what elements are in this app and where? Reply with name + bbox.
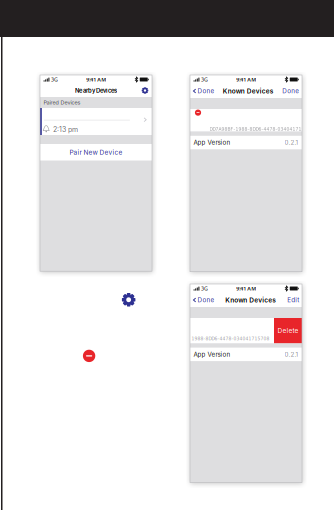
staticText: Delete — [277, 327, 298, 335]
staticText: Paired Devices — [43, 99, 80, 106]
button[interactable]: Delete — [274, 318, 302, 343]
staticText: Known Devices — [225, 296, 276, 304]
staticText: Done — [282, 87, 299, 95]
staticText: Known Devices — [223, 87, 274, 95]
staticText: 3G — [51, 76, 58, 83]
button[interactable]: 2:13 pm — [40, 108, 152, 135]
staticText: App Version — [193, 139, 230, 146]
button[interactable]: Done — [282, 84, 302, 98]
staticText: Nearby Devices — [75, 87, 117, 94]
staticText: 3G — [201, 285, 208, 292]
staticText: 2:13 pm — [53, 125, 78, 134]
staticText: Done — [197, 87, 214, 95]
staticText: Pair New Device — [69, 148, 122, 156]
button[interactable]: Done — [190, 293, 214, 307]
staticText: 1988-8DD6-4478-034041715708 — [191, 336, 269, 341]
staticText: Edit — [287, 296, 299, 304]
staticText: 3G — [201, 76, 208, 83]
staticText: 9:41 AM — [86, 76, 106, 83]
staticText: 9:41 AM — [236, 76, 256, 83]
button[interactable]: Done — [190, 84, 214, 98]
staticText: 9:41 AM — [236, 285, 256, 292]
button[interactable]: Settings — [139, 84, 150, 97]
staticText: DD7A98BF-1988-8DD6-4478-034041715708 — [209, 126, 313, 132]
staticText: Done — [197, 296, 214, 304]
button[interactable]: Remove device — [192, 107, 203, 118]
button[interactable]: Edit — [287, 293, 302, 307]
button[interactable]: Pair New Device — [40, 144, 152, 160]
staticText: 0.2.1 — [284, 351, 298, 358]
staticText: 0.2.1 — [284, 139, 298, 146]
staticText: App Version — [193, 351, 230, 358]
